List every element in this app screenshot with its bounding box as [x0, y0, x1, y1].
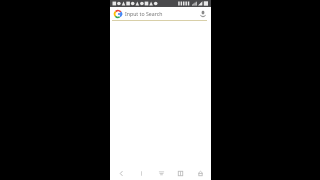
other: Google — [113, 9, 122, 18]
button[interactable]: Tabs — [173, 166, 187, 180]
button[interactable]: Google — [110, 7, 211, 20]
button[interactable]: Forward — [134, 166, 148, 180]
button[interactable]: Home — [193, 166, 207, 180]
button[interactable]: Menu — [154, 166, 168, 180]
button[interactable]: Back — [114, 166, 128, 180]
button[interactable]: Voice search — [198, 9, 208, 19]
staticText: Input to Search — [125, 10, 163, 17]
